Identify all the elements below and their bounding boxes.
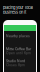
staticText: Open until 6pm [6, 51, 31, 55]
staticText: Mitte Coffee Bar [6, 47, 31, 51]
staticText: Nearby places [6, 34, 30, 38]
staticText: Closes 8pm [6, 63, 25, 67]
staticText: Studio Nord [6, 59, 25, 63]
staticText: placing your local [3, 5, 33, 10]
staticText: business on it [3, 10, 26, 15]
